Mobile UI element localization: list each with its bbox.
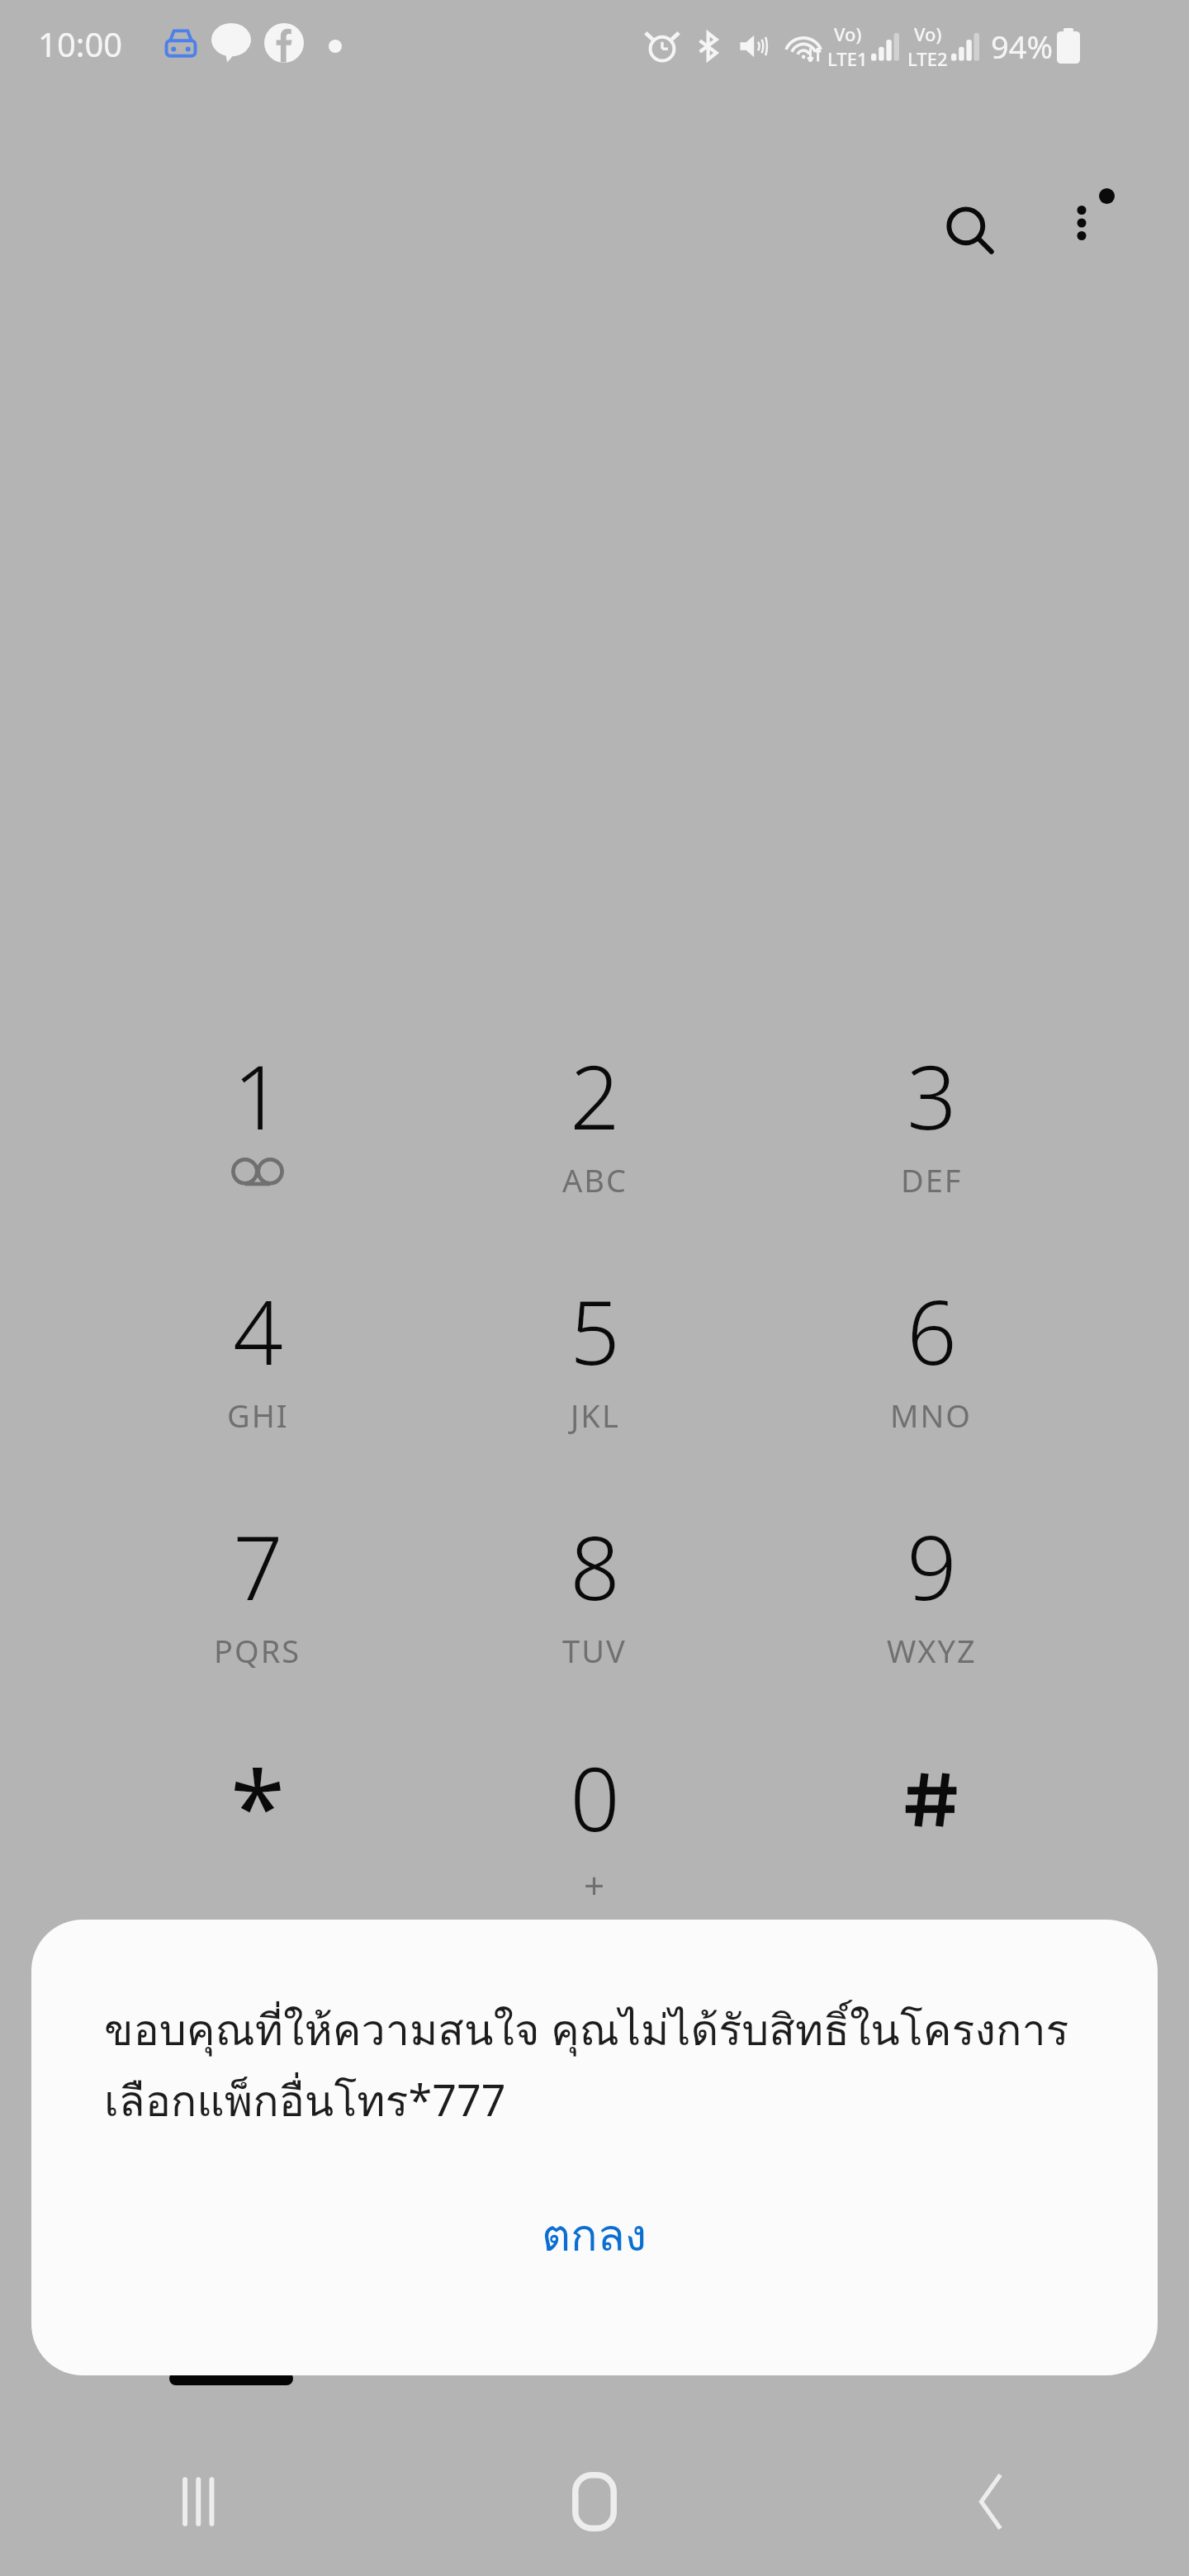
staticText: 6 bbox=[907, 1271, 957, 1390]
staticText: 5 bbox=[570, 1271, 620, 1390]
button[interactable]: 4 bbox=[117, 1271, 398, 1494]
staticText: 94% bbox=[991, 25, 1054, 68]
button[interactable]: 2 bbox=[454, 1036, 735, 1259]
staticText: 7 bbox=[233, 1507, 283, 1626]
staticText: 4 bbox=[233, 1271, 283, 1390]
staticText: Vo) bbox=[834, 21, 862, 46]
button[interactable]: ตกลง bbox=[31, 2181, 1158, 2289]
button[interactable]: 3 bbox=[791, 1036, 1072, 1259]
staticText: MNO bbox=[890, 1394, 973, 1437]
staticText: + bbox=[584, 1860, 607, 1910]
staticText: TUV bbox=[562, 1629, 627, 1672]
button[interactable]: 6 bbox=[791, 1271, 1072, 1494]
staticText: 8 bbox=[570, 1507, 620, 1626]
staticText: 9 bbox=[907, 1507, 957, 1626]
staticText: DEF bbox=[901, 1158, 963, 1201]
staticText: 1 bbox=[233, 1036, 283, 1155]
button[interactable]: 7 bbox=[117, 1507, 398, 1730]
staticText: PQRS bbox=[214, 1629, 301, 1672]
staticText: ABC bbox=[562, 1158, 628, 1201]
staticText: Vo) bbox=[914, 21, 942, 46]
staticText: 2 bbox=[570, 1036, 620, 1155]
staticText: 10:00 bbox=[38, 21, 123, 66]
button[interactable] bbox=[791, 1738, 1072, 1961]
button[interactable]: 0 bbox=[454, 1738, 735, 1961]
button[interactable]: Back bbox=[793, 2427, 1189, 2576]
button[interactable]: 8 bbox=[454, 1507, 735, 1730]
button[interactable]: Home bbox=[396, 2427, 793, 2576]
button[interactable]: Search bbox=[921, 182, 1021, 281]
staticText: WXYZ bbox=[887, 1629, 977, 1672]
staticText: * bbox=[230, 1738, 286, 1862]
staticText: ตกลง bbox=[542, 2200, 647, 2271]
button[interactable]: 9 bbox=[791, 1507, 1072, 1730]
button[interactable]: 1 bbox=[117, 1036, 398, 1259]
button[interactable]: Recents bbox=[0, 2427, 396, 2576]
staticText: LTE2 bbox=[907, 46, 948, 71]
button[interactable]: 5 bbox=[454, 1271, 735, 1494]
staticText: LTE1 bbox=[827, 46, 868, 71]
staticText: GHI bbox=[227, 1394, 289, 1437]
staticText: 3 bbox=[907, 1036, 957, 1155]
staticText: ขอบคุณที่ให้ความสนใจ คุณไม่ได้รับสิทธิ์ใ… bbox=[104, 1996, 1085, 2135]
button[interactable]: * bbox=[117, 1738, 398, 1961]
staticText: JKL bbox=[571, 1394, 620, 1437]
button[interactable]: More options bbox=[1032, 165, 1148, 281]
staticText: 0 bbox=[570, 1738, 620, 1857]
